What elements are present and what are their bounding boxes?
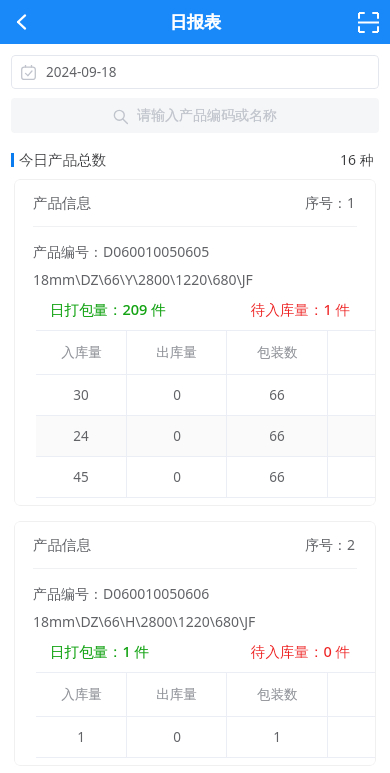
staticText: 序号：2 [305, 535, 356, 554]
staticText: 24 [73, 427, 89, 445]
staticText: 包装数 [257, 686, 298, 703]
staticText: 产品信息 [33, 536, 91, 554]
staticText: 2024-09-18 [46, 63, 117, 81]
staticText: 入库量 [61, 344, 102, 361]
staticText: 66 [269, 468, 285, 486]
staticText: 入库量 [61, 686, 102, 703]
button[interactable]: Back [0, 0, 44, 44]
staticText: 日报表 [170, 12, 221, 33]
staticText: 出库量 [156, 686, 197, 703]
staticText: 66 [269, 427, 285, 445]
button[interactable]: 产品信息 [14, 179, 376, 506]
staticText: 日打包量：1 件 [50, 641, 150, 661]
button[interactable]: 2024-09-18 [11, 55, 379, 89]
staticText: 66 [269, 386, 285, 404]
staticText: 0 [173, 386, 181, 404]
staticText: 18mm\DZ\66\Y\2800\1220\680\JF [33, 270, 253, 289]
button[interactable]: 产品信息 [14, 521, 376, 766]
staticText: 0 [173, 468, 181, 486]
staticText: 今日产品总数 [19, 151, 106, 169]
staticText: 产品编号：D060010050605 [33, 242, 210, 261]
staticText: 待入库量：1 件 [251, 299, 351, 319]
staticText: 1 [77, 728, 85, 746]
staticText: 18mm\DZ\66\H\2800\1220\680\JF [33, 612, 256, 631]
staticText: 0 [173, 728, 181, 746]
staticText: 请输入产品编码或名称 [137, 107, 277, 125]
staticText: 序号：1 [305, 193, 356, 212]
staticText: 16 种 [340, 150, 374, 169]
staticText: 出库量 [156, 344, 197, 361]
button[interactable]: 请输入产品编码或名称 [11, 98, 379, 133]
staticText: 1 [273, 728, 281, 746]
staticText: 待入库量：0 件 [251, 641, 351, 661]
staticText: 产品编号：D060010050606 [33, 584, 210, 603]
staticText: 0 [173, 427, 181, 445]
staticText: 30 [73, 386, 89, 404]
staticText: 包装数 [257, 344, 298, 361]
staticText: 产品信息 [33, 194, 91, 212]
staticText: 日打包量：209 件 [50, 299, 166, 319]
button[interactable]: Scan barcode [346, 0, 390, 44]
staticText: 45 [73, 468, 89, 486]
